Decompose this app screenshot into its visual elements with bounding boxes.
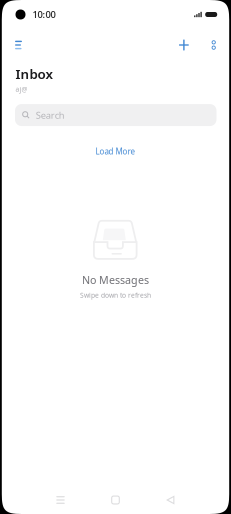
staticText: Search xyxy=(36,109,65,121)
button[interactable]: Back xyxy=(155,490,185,510)
button[interactable]: Recents xyxy=(45,490,75,510)
staticText: No Messages xyxy=(82,273,149,287)
staticText: Swipe down to refresh xyxy=(80,291,151,300)
button[interactable]: More xyxy=(196,35,229,55)
staticText: Load More xyxy=(95,146,135,157)
staticText: aj@ xyxy=(15,85,27,94)
staticText: Inbox xyxy=(15,65,52,83)
button[interactable]: Compose xyxy=(172,35,196,55)
button[interactable]: Home xyxy=(100,490,130,510)
button[interactable]: Load More xyxy=(85,142,145,161)
button[interactable]: Menu xyxy=(2,35,30,55)
staticText: 10:00 xyxy=(32,8,55,21)
